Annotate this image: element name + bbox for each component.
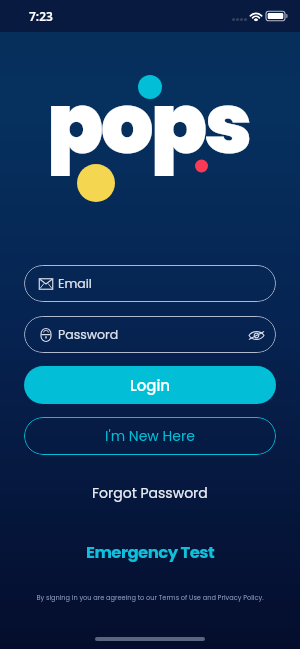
staticText: Email	[58, 275, 92, 292]
staticText: I'm New Here	[105, 426, 195, 446]
button[interactable]: I'm New Here	[24, 417, 276, 455]
button[interactable]: Email	[24, 265, 276, 302]
staticText: By signing in you are agreeing to our Te…	[0, 593, 300, 602]
button[interactable]: Emergency Test	[80, 535, 221, 570]
button[interactable]: Password	[24, 316, 276, 353]
button[interactable]: Show password	[247, 326, 265, 344]
button[interactable]: Forgot Password	[86, 477, 214, 509]
staticText: pops	[47, 66, 250, 182]
staticText: Login	[130, 375, 171, 396]
staticText: Password	[58, 326, 119, 343]
button[interactable]: Login	[24, 366, 276, 404]
staticText: 7:23	[29, 8, 53, 24]
